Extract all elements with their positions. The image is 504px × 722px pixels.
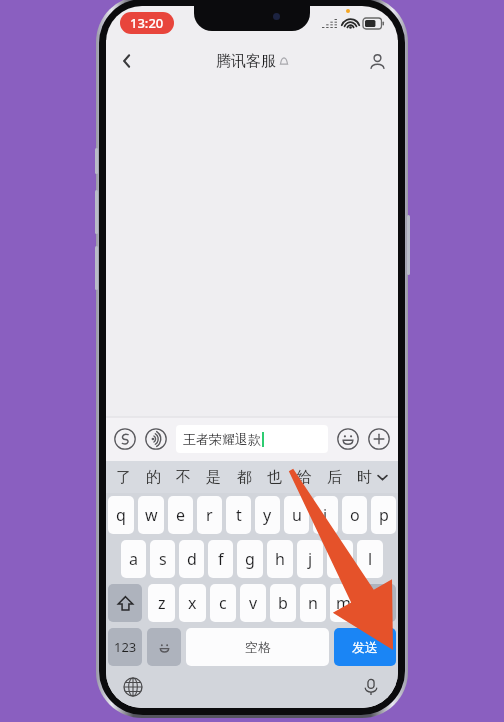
button[interactable]: f bbox=[208, 540, 233, 578]
button[interactable]: p bbox=[371, 496, 396, 534]
button[interactable]: e bbox=[168, 496, 193, 534]
button[interactable]: y bbox=[255, 496, 280, 534]
staticText: b bbox=[278, 592, 288, 614]
staticText: 发送 bbox=[352, 639, 378, 655]
button[interactable]: x bbox=[179, 584, 206, 622]
button[interactable]: r bbox=[197, 496, 222, 534]
button[interactable]: q bbox=[108, 496, 134, 534]
button[interactable]: k bbox=[327, 540, 353, 578]
staticText: q bbox=[116, 504, 126, 526]
button[interactable]: j bbox=[297, 540, 323, 578]
staticText: 的 bbox=[146, 468, 161, 487]
staticText: h bbox=[275, 548, 285, 570]
staticText: 给 bbox=[297, 468, 312, 487]
staticText: 了 bbox=[116, 468, 131, 487]
button[interactable]: 不 bbox=[176, 468, 191, 487]
button[interactable]: m bbox=[330, 584, 356, 622]
button[interactable]: 的 bbox=[146, 468, 161, 487]
staticText: i bbox=[323, 504, 328, 526]
staticText: t bbox=[236, 504, 242, 526]
button[interactable]: Emoji keyboard bbox=[147, 628, 181, 666]
button[interactable]: s bbox=[150, 540, 175, 578]
button[interactable]: 也 bbox=[267, 468, 282, 487]
staticText: w bbox=[145, 504, 158, 526]
staticText: g bbox=[245, 548, 255, 570]
staticText: 时 bbox=[357, 468, 372, 487]
staticText: r bbox=[206, 504, 213, 526]
button[interactable]: Emoji bbox=[336, 427, 360, 451]
staticText: 也 bbox=[267, 468, 282, 487]
button[interactable]: u bbox=[284, 496, 309, 534]
button[interactable]: Voice input bbox=[144, 427, 168, 451]
staticText: 后 bbox=[327, 468, 342, 487]
staticText: f bbox=[218, 548, 224, 570]
button[interactable]: t bbox=[226, 496, 251, 534]
staticText: 123 bbox=[114, 638, 137, 656]
button[interactable]: g bbox=[237, 540, 263, 578]
staticText: n bbox=[308, 592, 318, 614]
staticText: x bbox=[188, 592, 197, 614]
staticText: o bbox=[350, 504, 360, 526]
staticText: 空格 bbox=[245, 639, 271, 655]
button[interactable]: Collapse candidates bbox=[371, 466, 393, 488]
staticText: e bbox=[176, 504, 186, 526]
button[interactable]: Emoticon pack bbox=[113, 427, 137, 451]
button[interactable]: Profile bbox=[356, 40, 398, 82]
button[interactable]: Shift bbox=[108, 584, 142, 622]
button[interactable]: h bbox=[267, 540, 293, 578]
staticText: s bbox=[159, 548, 167, 570]
staticText: 不 bbox=[176, 468, 191, 487]
staticText: u bbox=[292, 504, 302, 526]
staticText: z bbox=[158, 592, 166, 614]
button[interactable]: 时 bbox=[357, 468, 372, 487]
button[interactable]: 了 bbox=[116, 468, 131, 487]
button[interactable]: Switch language bbox=[120, 674, 146, 700]
staticText: d bbox=[187, 548, 197, 570]
button[interactable]: 给 bbox=[297, 468, 312, 487]
staticText: j bbox=[308, 548, 313, 570]
staticText: 是 bbox=[206, 468, 221, 487]
button[interactable]: o bbox=[342, 496, 367, 534]
staticText: a bbox=[129, 548, 138, 570]
button[interactable]: 123 bbox=[108, 628, 142, 666]
staticText: 都 bbox=[237, 468, 252, 487]
button[interactable]: z bbox=[148, 584, 175, 622]
staticText: 王者荣耀退款 bbox=[183, 431, 261, 447]
staticText: l bbox=[368, 548, 373, 570]
button[interactable]: b bbox=[270, 584, 296, 622]
button[interactable]: c bbox=[210, 584, 236, 622]
button[interactable]: 空格 bbox=[186, 628, 329, 666]
button[interactable]: a bbox=[121, 540, 146, 578]
button[interactable]: Backspace bbox=[362, 584, 396, 622]
staticText: m bbox=[336, 592, 351, 614]
button[interactable]: l bbox=[357, 540, 383, 578]
button[interactable]: 是 bbox=[206, 468, 221, 487]
staticText: 13:20 bbox=[130, 14, 164, 32]
button[interactable]: 发送 bbox=[334, 628, 396, 666]
button[interactable]: 都 bbox=[237, 468, 252, 487]
staticText: v bbox=[249, 592, 258, 614]
button[interactable]: n bbox=[300, 584, 326, 622]
staticText: c bbox=[219, 592, 227, 614]
button[interactable]: w bbox=[138, 496, 164, 534]
staticText: 腾讯客服 bbox=[216, 52, 276, 71]
staticText: y bbox=[263, 504, 272, 526]
button[interactable]: Back bbox=[106, 40, 148, 82]
button[interactable]: Dictation bbox=[358, 674, 384, 700]
button[interactable]: 后 bbox=[327, 468, 342, 487]
button[interactable]: v bbox=[240, 584, 266, 622]
button[interactable]: More bbox=[367, 427, 391, 451]
button[interactable]: 王者荣耀退款 bbox=[176, 425, 328, 453]
staticText: p bbox=[379, 504, 389, 526]
button[interactable]: d bbox=[179, 540, 204, 578]
button[interactable]: i bbox=[313, 496, 338, 534]
